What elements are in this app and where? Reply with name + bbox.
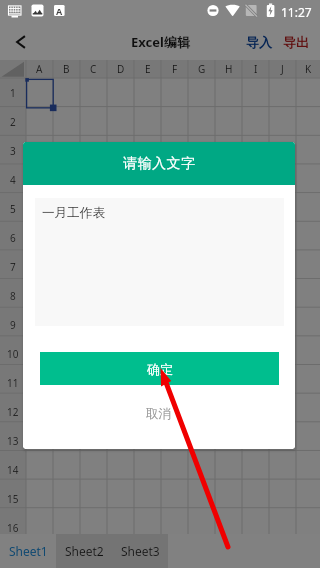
staticText: 17 xyxy=(7,542,19,552)
staticText: 取消 xyxy=(146,406,172,422)
staticText: B xyxy=(63,62,70,76)
button[interactable]: 导出 xyxy=(280,29,312,55)
staticText: 1 xyxy=(10,86,16,100)
staticText: A xyxy=(56,5,63,17)
staticText: 11:27 xyxy=(281,4,312,20)
staticText: J xyxy=(281,62,284,76)
staticText: 导入 xyxy=(246,34,272,50)
button[interactable]: Sheet1 xyxy=(0,534,56,568)
staticText: K xyxy=(305,62,312,76)
staticText: 一月工作表 xyxy=(42,205,105,221)
staticText: 15 xyxy=(7,492,19,506)
button[interactable]: Sheet2 xyxy=(56,534,112,568)
staticText: 13 xyxy=(7,434,19,448)
staticText: 5 xyxy=(10,202,16,216)
staticText: Sheet2 xyxy=(65,543,104,559)
staticText: I xyxy=(254,62,258,76)
staticText: 14 xyxy=(7,463,19,477)
staticText: 确定 xyxy=(147,361,173,377)
button[interactable]: 导入 xyxy=(243,29,275,55)
staticText: C xyxy=(90,62,97,76)
staticText: 11 xyxy=(7,376,19,390)
staticText: 8 xyxy=(10,289,16,303)
button[interactable]: Back xyxy=(0,24,44,60)
staticText: 请输入文字 xyxy=(123,155,196,173)
staticText: Sheet1 xyxy=(9,543,48,559)
button[interactable]: 确定 xyxy=(40,352,279,385)
staticText: 6 xyxy=(10,231,16,245)
staticText: 9 xyxy=(10,318,16,332)
staticText: Excel编辑 xyxy=(131,33,190,51)
staticText: 导出 xyxy=(283,34,309,50)
staticText: H xyxy=(225,62,233,76)
staticText: 10 xyxy=(7,347,19,361)
button[interactable]: Sheet3 xyxy=(112,534,168,568)
staticText: 2 xyxy=(10,115,16,129)
staticText: G xyxy=(198,62,206,76)
staticText: 12 xyxy=(7,405,19,419)
staticText: D xyxy=(117,62,125,76)
staticText: 3 xyxy=(10,144,16,158)
staticText: E xyxy=(145,62,151,76)
button[interactable]: 一月工作表 xyxy=(35,198,284,326)
staticText: Sheet3 xyxy=(121,543,160,559)
staticText: 4 xyxy=(10,173,16,187)
staticText: 7 xyxy=(10,260,16,274)
staticText: 16 xyxy=(7,521,19,535)
staticText: F xyxy=(172,62,178,76)
button[interactable]: 取消 xyxy=(23,400,295,428)
staticText: A xyxy=(36,62,43,76)
